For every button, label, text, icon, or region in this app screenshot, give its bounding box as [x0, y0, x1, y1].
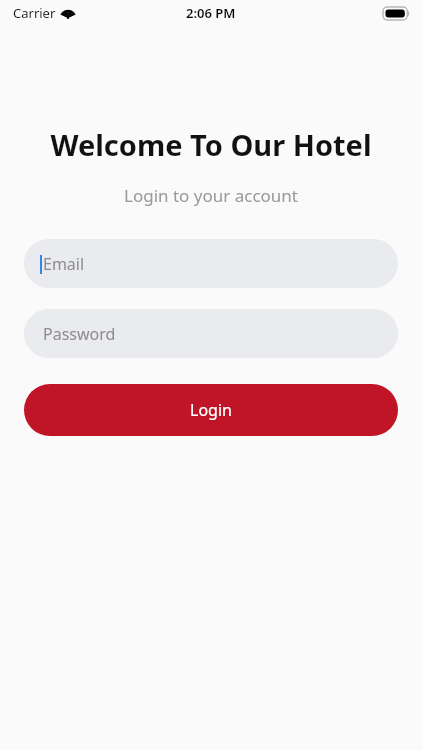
staticText: Password	[43, 323, 116, 345]
button[interactable]: Email	[24, 239, 398, 288]
other: Battery full	[383, 7, 410, 20]
staticText: Email	[43, 253, 85, 275]
button[interactable]: Login	[24, 384, 398, 436]
staticText: Carrier	[13, 4, 56, 22]
button[interactable]: Password	[24, 309, 398, 358]
staticText: 2:06 PM	[186, 4, 236, 22]
staticText: Login to your account	[0, 184, 422, 207]
other: Wi-Fi signal	[61, 8, 75, 19]
staticText: Welcome To Our Hotel	[0, 125, 422, 164]
staticText: Login	[190, 399, 232, 421]
